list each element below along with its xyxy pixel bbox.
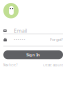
staticText: Create account bbox=[43, 63, 63, 67]
staticText: New here? bbox=[3, 63, 17, 67]
staticText: Forgot? bbox=[50, 37, 63, 42]
button[interactable]: Sign In bbox=[3, 50, 63, 59]
staticText: Sign In bbox=[26, 52, 40, 57]
staticText: •••••• bbox=[14, 37, 26, 42]
staticText: Email bbox=[14, 27, 27, 34]
